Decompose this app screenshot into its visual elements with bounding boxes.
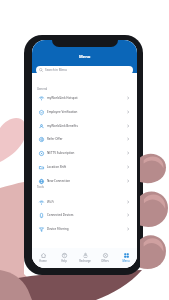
- button[interactable]: Offers: [95, 248, 115, 268]
- staticText: Connected Devices: [47, 213, 74, 217]
- button[interactable]: New Connection: [32, 174, 137, 188]
- staticText: Menu: [122, 259, 130, 263]
- staticText: Search in Menu: [45, 68, 67, 72]
- button[interactable]: Search in Menu: [36, 66, 133, 74]
- button[interactable]: Menu: [116, 248, 136, 268]
- button[interactable]: Employee Verification: [32, 105, 137, 119]
- staticText: Location Shift: [47, 165, 67, 169]
- button[interactable]: Recharge: [75, 248, 95, 268]
- staticText: Employee Verification: [47, 110, 78, 114]
- button[interactable]: Home: [33, 248, 53, 268]
- staticText: Recharge: [79, 259, 91, 263]
- staticText: Offers: [101, 259, 109, 263]
- staticText: Wi-Fi: [47, 200, 54, 204]
- staticText: Help: [61, 259, 67, 263]
- button[interactable]: myWorldLink Hotspot: [32, 91, 137, 105]
- staticText: Device Filtering: [47, 227, 69, 231]
- staticText: General: [37, 87, 48, 91]
- button[interactable]: myWorldLink Benefits: [32, 119, 137, 133]
- staticText: myWorldLink Hotspot: [47, 96, 78, 100]
- button[interactable]: Location Shift: [32, 160, 137, 174]
- staticText: Refer Offer: [47, 137, 63, 141]
- staticText: NETTV Subscription: [47, 151, 75, 155]
- button[interactable]: Connected Devices: [32, 208, 137, 222]
- staticText: New Connection: [47, 179, 71, 183]
- staticText: Tools: [37, 185, 44, 189]
- staticText: Menu: [79, 54, 91, 59]
- staticText: Home: [39, 259, 47, 263]
- staticText: myWorldLink Benefits: [47, 124, 78, 128]
- button[interactable]: Wi-Fi: [32, 195, 137, 209]
- button[interactable]: Device Filtering: [32, 222, 137, 236]
- button[interactable]: NETTV Subscription: [32, 146, 137, 160]
- button[interactable]: Refer Offer: [32, 132, 137, 146]
- button[interactable]: Help: [54, 248, 74, 268]
